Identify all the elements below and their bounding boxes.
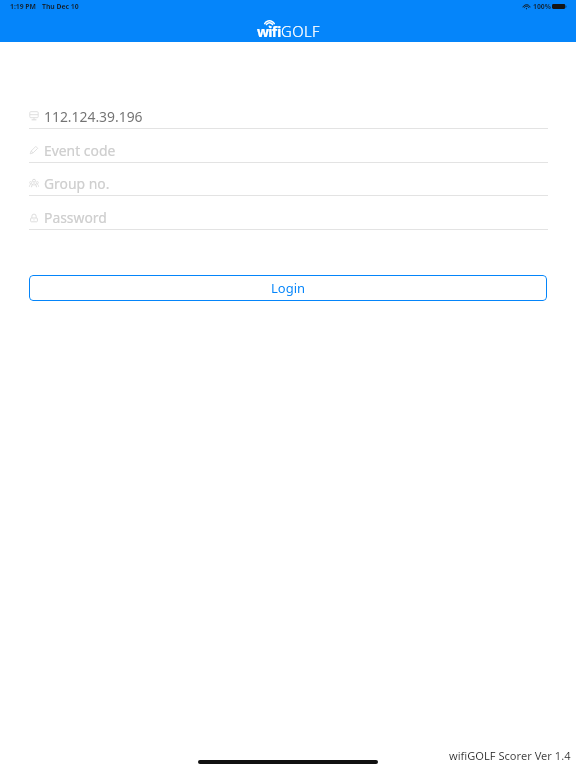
staticText: Group no. [44,174,110,193]
staticText: Event code [44,141,116,160]
other: Battery [552,4,567,9]
other: Server [29,111,39,121]
staticText: Thu Dec 10 [42,2,79,11]
staticText: 100% [533,2,551,11]
other: Group [29,178,39,188]
staticText: wifi [257,22,281,41]
button[interactable]: Server [29,101,548,129]
staticText: GOLF [281,21,320,41]
staticText: Password [44,208,107,227]
staticText: 112.124.39.196 [44,107,143,126]
other: Password [29,212,39,222]
button[interactable]: Password [29,202,548,230]
button[interactable]: Group [29,168,548,196]
other: Wi-Fi [523,3,530,9]
other: Edit [29,145,39,155]
button[interactable]: Login [29,275,547,301]
staticText: Login [271,279,306,297]
staticText: 1:19 PM [10,2,36,11]
staticText: wifiGOLF Scorer Ver 1.4 [449,748,571,763]
button[interactable]: Edit [29,135,548,163]
